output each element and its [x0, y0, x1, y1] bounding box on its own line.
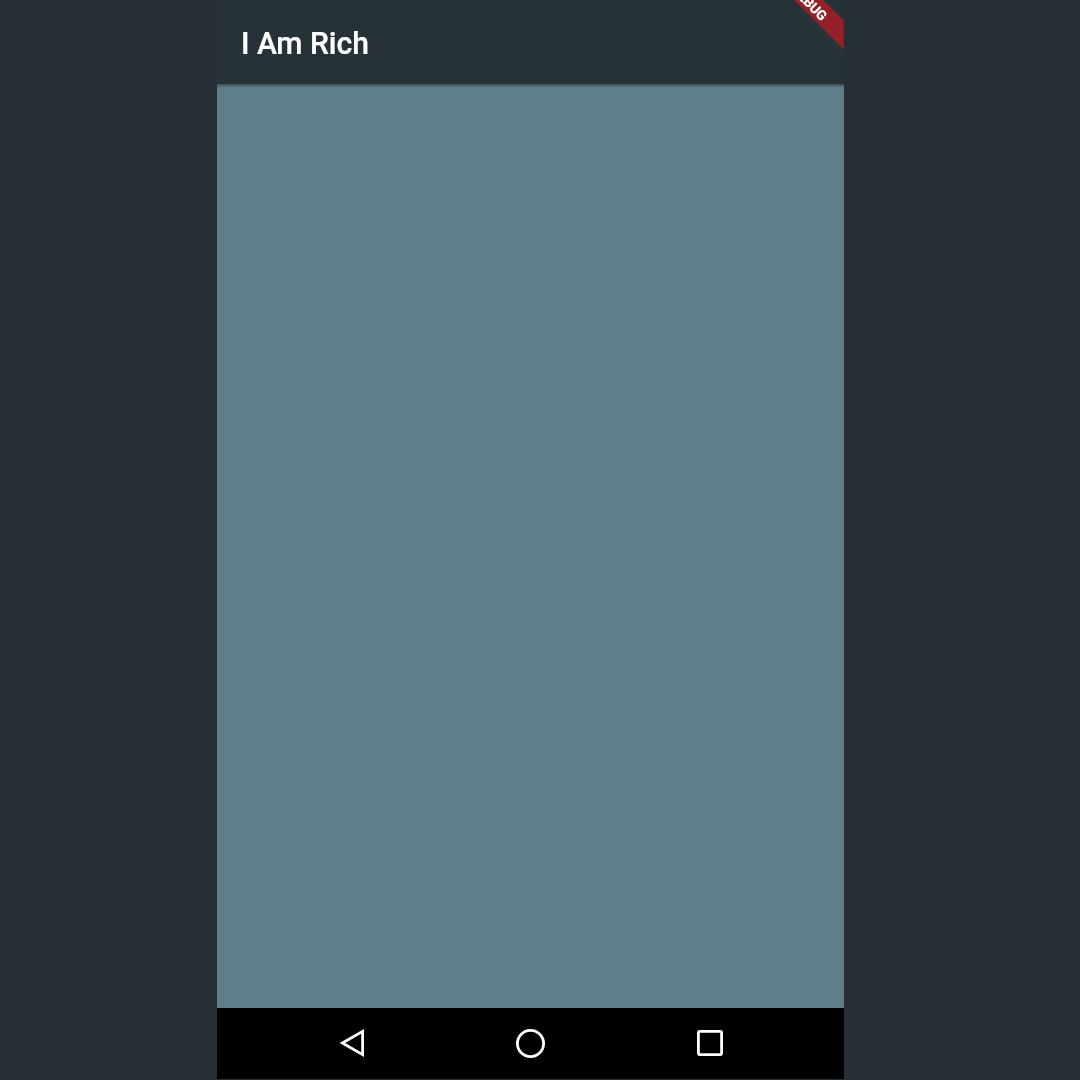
staticText: DEBUG — [789, 0, 831, 24]
staticText: I Am Rich — [241, 25, 369, 61]
button[interactable]: Home — [498, 1011, 562, 1075]
button[interactable]: Recent apps — [678, 1011, 742, 1075]
button[interactable]: Back — [320, 1011, 384, 1075]
